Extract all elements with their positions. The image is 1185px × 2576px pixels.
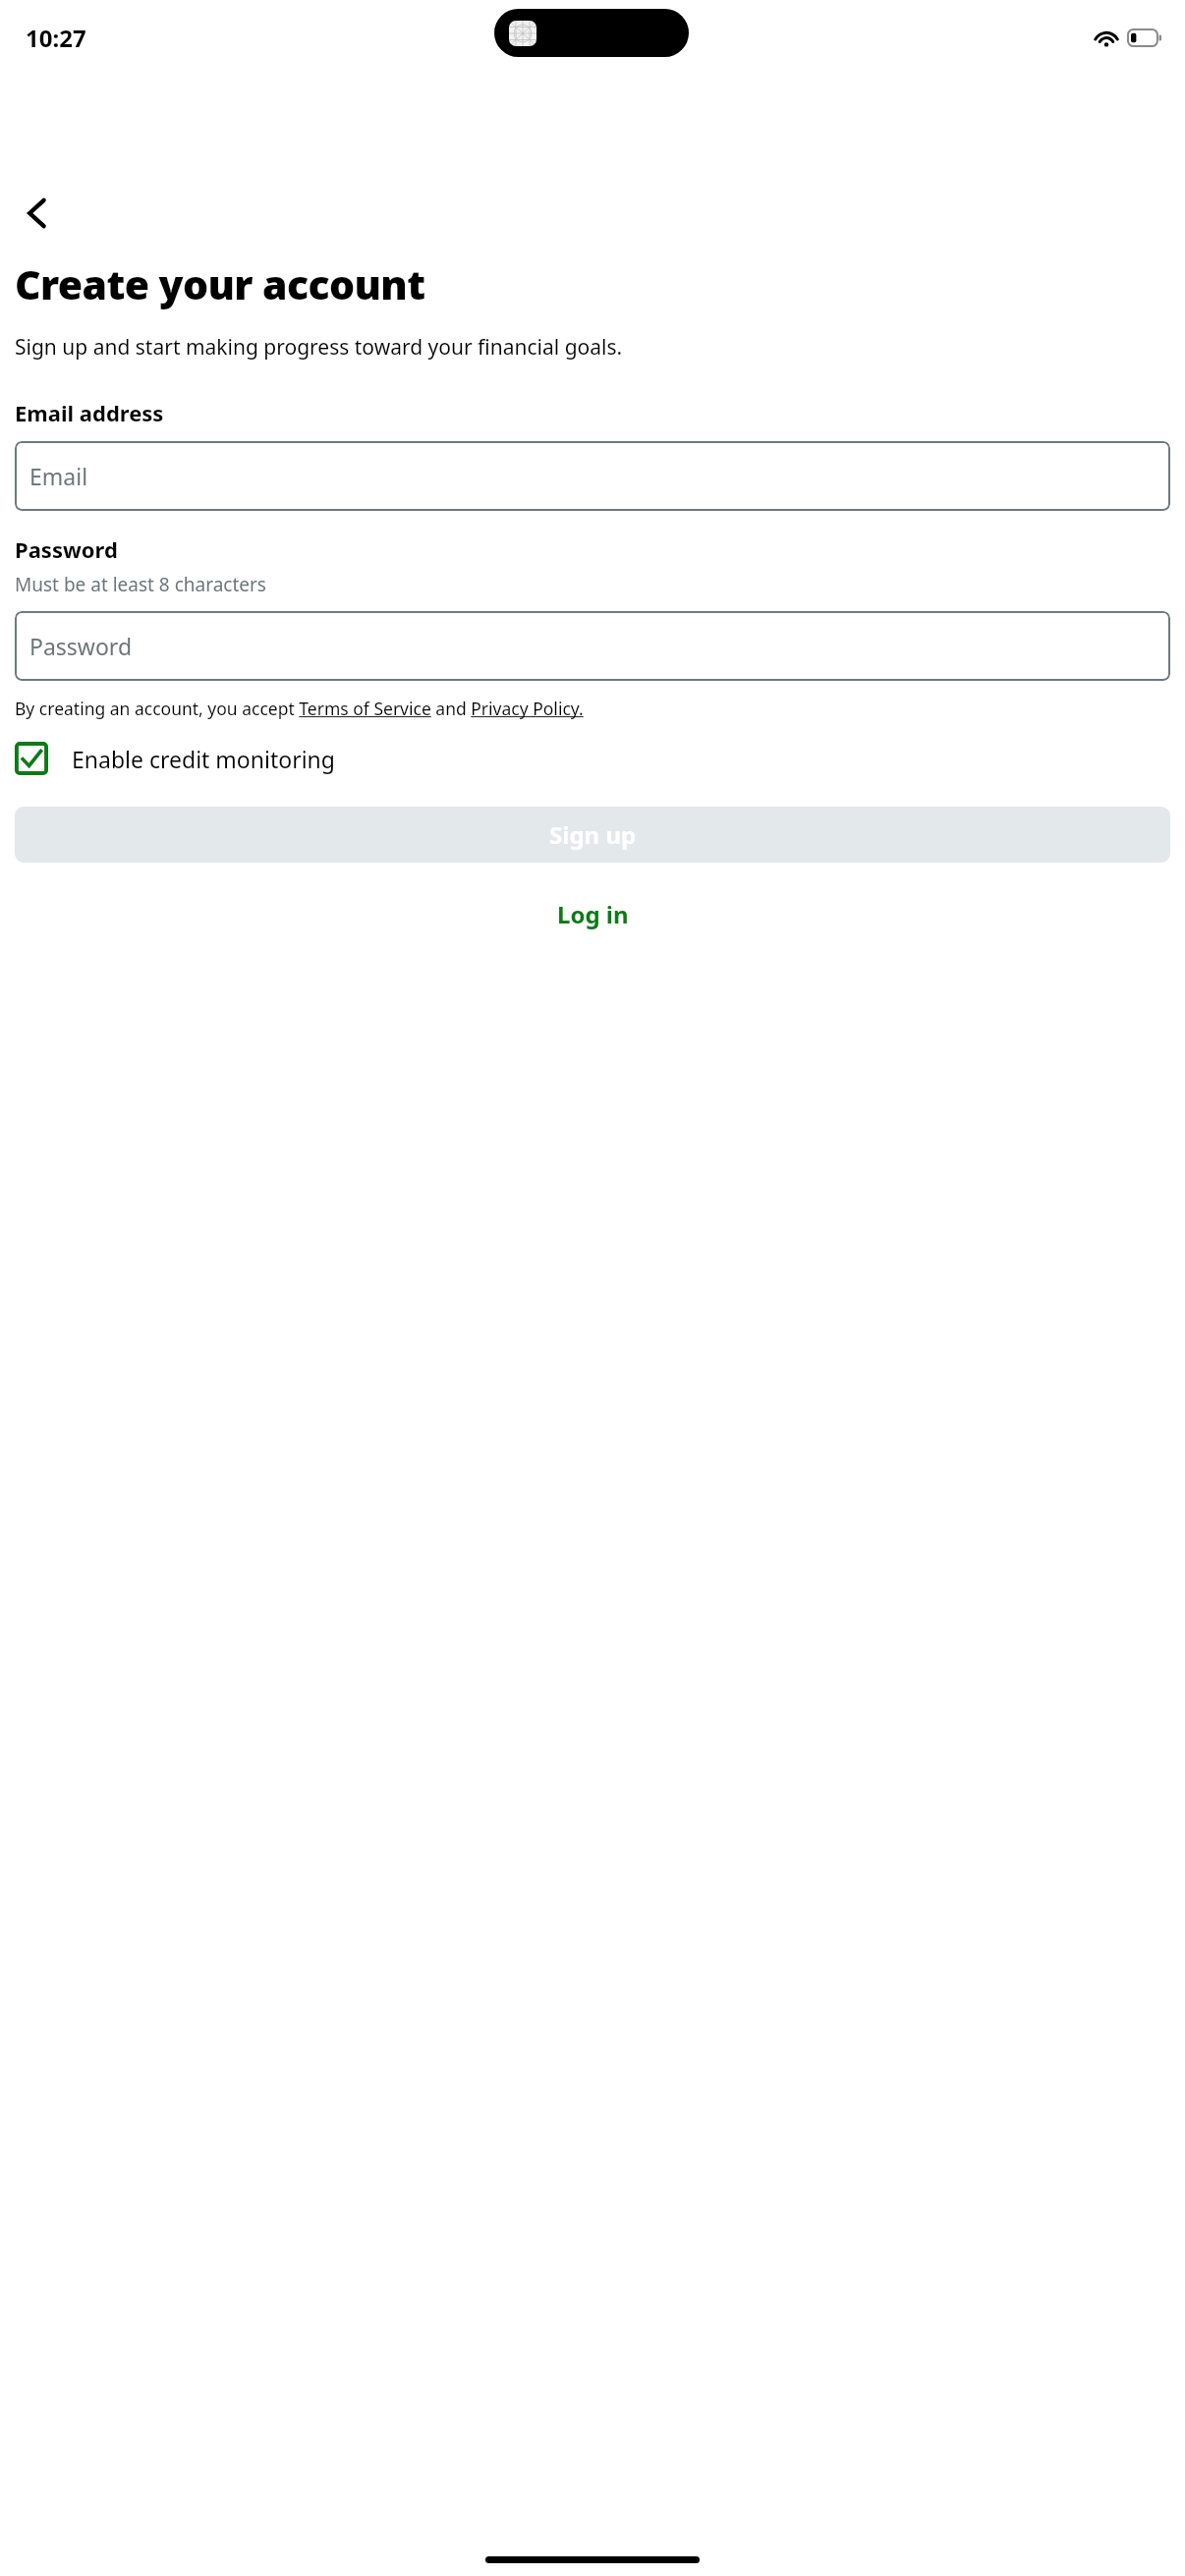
staticText: Email xyxy=(29,461,88,491)
staticText: Password xyxy=(15,534,118,564)
button[interactable]: Log in xyxy=(0,887,1185,940)
staticText: 10:27 xyxy=(26,22,86,54)
staticText: Must be at least 8 characters xyxy=(15,572,266,597)
button[interactable]: Email xyxy=(15,441,1170,511)
staticText: Password xyxy=(29,631,133,661)
staticText: Create your account xyxy=(15,256,425,311)
staticText: Enable credit monitoring xyxy=(72,744,335,774)
staticText: Email address xyxy=(15,398,164,427)
button[interactable]: Enable credit monitoring xyxy=(15,742,1167,775)
button[interactable]: Password xyxy=(15,611,1170,681)
staticText: Sign up and start making progress toward… xyxy=(15,333,623,362)
button[interactable]: Back xyxy=(6,182,69,245)
staticText: Log in xyxy=(557,898,629,930)
staticText: By creating an account, you accept Terms… xyxy=(15,697,584,720)
staticText: Sign up xyxy=(549,818,637,851)
